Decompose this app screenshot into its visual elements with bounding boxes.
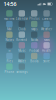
- staticText: Settings: [16, 70, 27, 74]
- staticText: Music: [18, 49, 25, 52]
- button[interactable]: Remind: [16, 31, 28, 42]
- staticText: Books: [30, 59, 38, 63]
- staticText: Camera: [42, 17, 51, 20]
- staticText: Files: [6, 59, 12, 63]
- button[interactable]: Settings: [16, 63, 28, 74]
- staticText: Weather: [41, 27, 52, 31]
- button[interactable]: Photos: [28, 10, 40, 20]
- staticText: Wallet: [18, 59, 26, 63]
- button[interactable]: Store: [40, 53, 53, 63]
- button[interactable]: Clock: [16, 21, 28, 31]
- staticText: Health: [42, 49, 51, 52]
- button[interactable]: Mail: [3, 21, 16, 31]
- button[interactable]: TV: [3, 42, 16, 52]
- button[interactable]: Files: [3, 53, 16, 63]
- staticText: Remind: [16, 38, 27, 42]
- button[interactable]: Notes: [3, 31, 16, 42]
- button[interactable]: Health: [40, 42, 53, 52]
- button[interactable]: Phone: [3, 63, 16, 74]
- button[interactable]: Wallet: [16, 53, 28, 63]
- staticText: Notes: [5, 38, 13, 42]
- staticText: Store: [43, 59, 50, 63]
- staticText: FaceTime: [4, 17, 15, 20]
- button[interactable]: Camera: [40, 10, 53, 20]
- staticText: Phone: [4, 70, 14, 74]
- staticText: Podcast: [29, 49, 39, 52]
- staticText: Maps: [31, 27, 37, 31]
- staticText: Mail: [7, 27, 12, 31]
- staticText: TV: [8, 49, 11, 52]
- button[interactable]: FaceTime: [3, 10, 16, 20]
- button[interactable]: Calendar: [16, 10, 28, 20]
- button[interactable]: Music: [16, 42, 28, 52]
- staticText: 14:56: [3, 0, 16, 8]
- staticText: Calendar: [16, 17, 28, 20]
- button[interactable]: Stocks: [28, 31, 40, 42]
- staticText: Clock: [18, 27, 25, 31]
- button[interactable]: Books: [28, 53, 40, 63]
- button[interactable]: News: [40, 31, 53, 42]
- staticText: News: [44, 38, 50, 42]
- staticText: Photos: [29, 17, 39, 20]
- button[interactable]: Podcast: [28, 42, 40, 52]
- button[interactable]: Weather: [40, 21, 53, 31]
- button[interactable]: Maps: [28, 21, 40, 31]
- staticText: Stocks: [31, 38, 38, 42]
